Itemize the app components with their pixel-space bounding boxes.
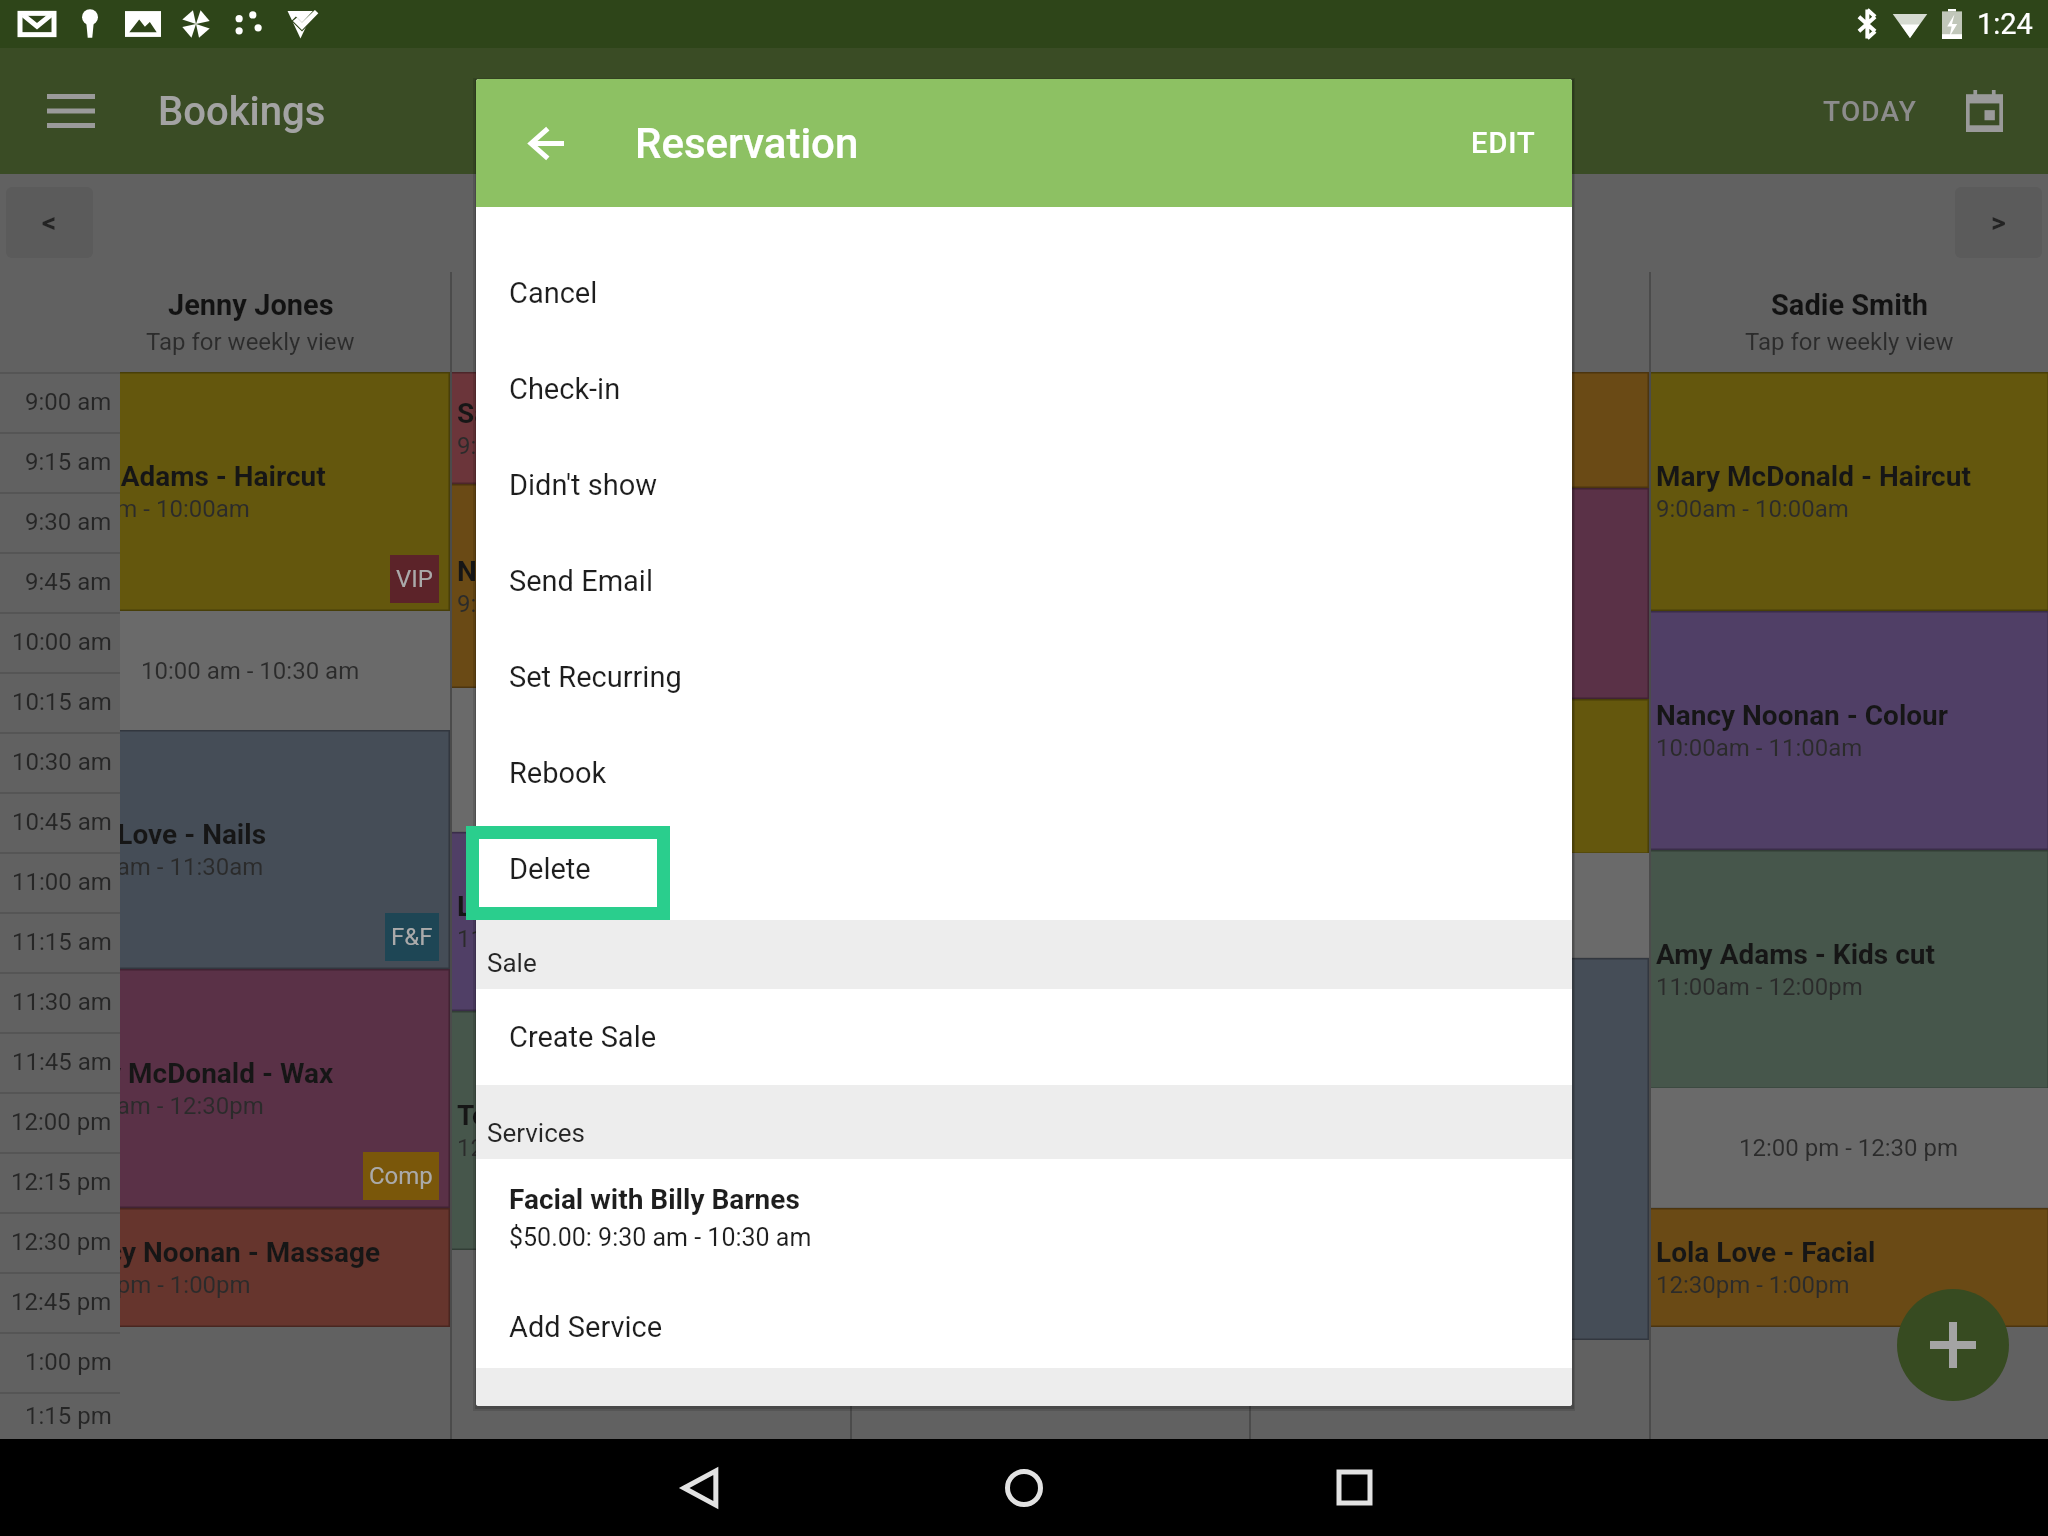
staticText: 9:15 am [25, 448, 112, 476]
staticText: 9:00am - 9:30am [457, 432, 637, 460]
staticText: 10:30 am [12, 748, 112, 776]
button[interactable]: Cancel [476, 245, 1572, 341]
staticText: Sale [487, 948, 537, 978]
staticText: Nancy Noonan - Colour [1656, 699, 1949, 732]
button[interactable]: Home [859, 1439, 1189, 1536]
button[interactable]: Nancy Noonan - Massage [50, 1208, 450, 1327]
staticText: 10:00 am - 10:30 am [141, 657, 360, 685]
button[interactable]: Amy Adams - Kids cut [1649, 850, 2048, 1089]
button[interactable]: Nancy Noonan - Colour [450, 484, 850, 688]
staticText: Send Email [509, 564, 653, 598]
button[interactable]: Amy Adams - Haircut [1249, 372, 1649, 488]
staticText: 9:45 am [25, 568, 112, 596]
staticText: Tap for weekly view [1745, 328, 1954, 356]
staticText: < [42, 206, 57, 239]
staticText: 10:00am - 11:00am [1656, 734, 1863, 762]
staticText: 1:15 pm [25, 1402, 112, 1430]
button[interactable]: Tom Thumb - Cut [1249, 958, 1649, 1340]
staticText: Create Sale [509, 1020, 657, 1054]
button[interactable]: 12:00 pm - 12:30 pm [1249, 853, 1649, 957]
button[interactable]: Rebook [476, 725, 1572, 821]
button[interactable]: Didn't show [476, 437, 1572, 533]
staticText: Facial with Billy Barnes [509, 1183, 800, 1216]
staticText: Sarah Smith [571, 288, 731, 322]
staticText: Amy Adams - Haircut [57, 460, 326, 493]
staticText: Reservation [635, 119, 859, 168]
staticText: 11:00am - 12:00pm [1656, 973, 1863, 1001]
button[interactable]: Send Email [476, 533, 1572, 629]
staticText: Lola Love - Nails [57, 818, 267, 851]
staticText: Nancy Noonan - Colour [457, 555, 750, 588]
button[interactable]: Lola Love - Facial [1649, 1208, 2048, 1327]
button[interactable]: Recent apps [1189, 1439, 1519, 1536]
button[interactable]: Open navigation menu [26, 66, 116, 156]
button[interactable]: Set Recurring [476, 629, 1572, 725]
button[interactable]: Facial with Billy Barnes [476, 1159, 1572, 1279]
button[interactable]: 12:00 pm - 12:30 pm [1649, 1088, 2048, 1207]
button[interactable]: Sue Stone [1249, 272, 1649, 372]
button[interactable]: Tom Thumb - Cut [450, 1011, 850, 1250]
staticText: Amy Adams - Kids cut [1656, 938, 1935, 971]
staticText: Mary McDonald - Wax [57, 1057, 334, 1090]
staticText: 11:30am - 12:15pm [457, 925, 664, 953]
staticText: Set Recurring [509, 660, 682, 694]
staticText: 1:24 [1977, 7, 2033, 41]
button[interactable]: Check-in [476, 341, 1572, 437]
staticText: 9:00 am [25, 388, 112, 416]
button[interactable]: Lola Love - Nails [50, 730, 450, 969]
staticText: Check-in [509, 372, 621, 406]
staticText: VIP [396, 565, 433, 593]
staticText: 9:30 am [25, 508, 112, 536]
staticText: Add Service [509, 1310, 663, 1344]
staticText: EDIT [1471, 126, 1536, 160]
button[interactable]: Sarah Smith [450, 272, 850, 372]
button[interactable]: Back [508, 105, 584, 181]
button[interactable]: Add booking [1897, 1289, 2009, 1401]
button[interactable]: Nancy Noonan - Colour [1649, 611, 2048, 850]
button[interactable]: Create Sale [476, 989, 1572, 1085]
button[interactable]: Back [529, 1439, 859, 1536]
button[interactable]: Add Service [476, 1279, 1572, 1375]
button[interactable]: Mary McDonald - Haircut [1649, 372, 2048, 611]
staticText: 1:00 pm [25, 1348, 112, 1376]
button[interactable]: Next day [1955, 187, 2042, 258]
staticText: Services [487, 1118, 585, 1148]
button[interactable]: Sarah Smith - Cut [450, 372, 850, 484]
button[interactable]: Lola Love - Colour [450, 832, 850, 1011]
button[interactable]: Mary McDonald - Wax [850, 969, 1250, 1208]
button[interactable]: Amy Adams - Haircut [50, 372, 450, 611]
button[interactable]: Lola Love - Colour [1249, 699, 1649, 854]
staticText: 10:00 am [12, 628, 112, 656]
button[interactable]: Mary McDonald - Wax [50, 969, 450, 1208]
staticText: Nancy Noonan - Massage [57, 1236, 381, 1269]
staticText: Delete [509, 852, 591, 886]
staticText: 10:15 am [12, 688, 112, 716]
staticText: 12:15pm - 1:15pm [457, 1134, 651, 1162]
button[interactable]: Sadie Smith [1649, 272, 2048, 372]
button[interactable]: Pick date [1941, 68, 2027, 154]
button[interactable]: TODAY [1794, 75, 1941, 148]
staticText: Mary McDonald - Haircut [1656, 460, 1971, 493]
button[interactable]: 11:00 am - 11:30 am [450, 688, 850, 831]
button[interactable]: EDIT [1441, 104, 1572, 182]
button[interactable]: Previous day [6, 187, 93, 258]
staticText: Bookings [158, 88, 326, 135]
button[interactable]: Nancy Noonan - Colour [1249, 488, 1649, 699]
staticText: 12:30pm - 1:00pm [1656, 1271, 1850, 1299]
staticText: 9:00am - 10:00am [57, 495, 250, 523]
staticText: 11:15 am [12, 928, 112, 956]
button[interactable]: Delete [476, 821, 1572, 917]
button[interactable]: 10:00 am - 10:30 am [50, 611, 450, 730]
button[interactable]: Jenny Jones [50, 272, 450, 372]
